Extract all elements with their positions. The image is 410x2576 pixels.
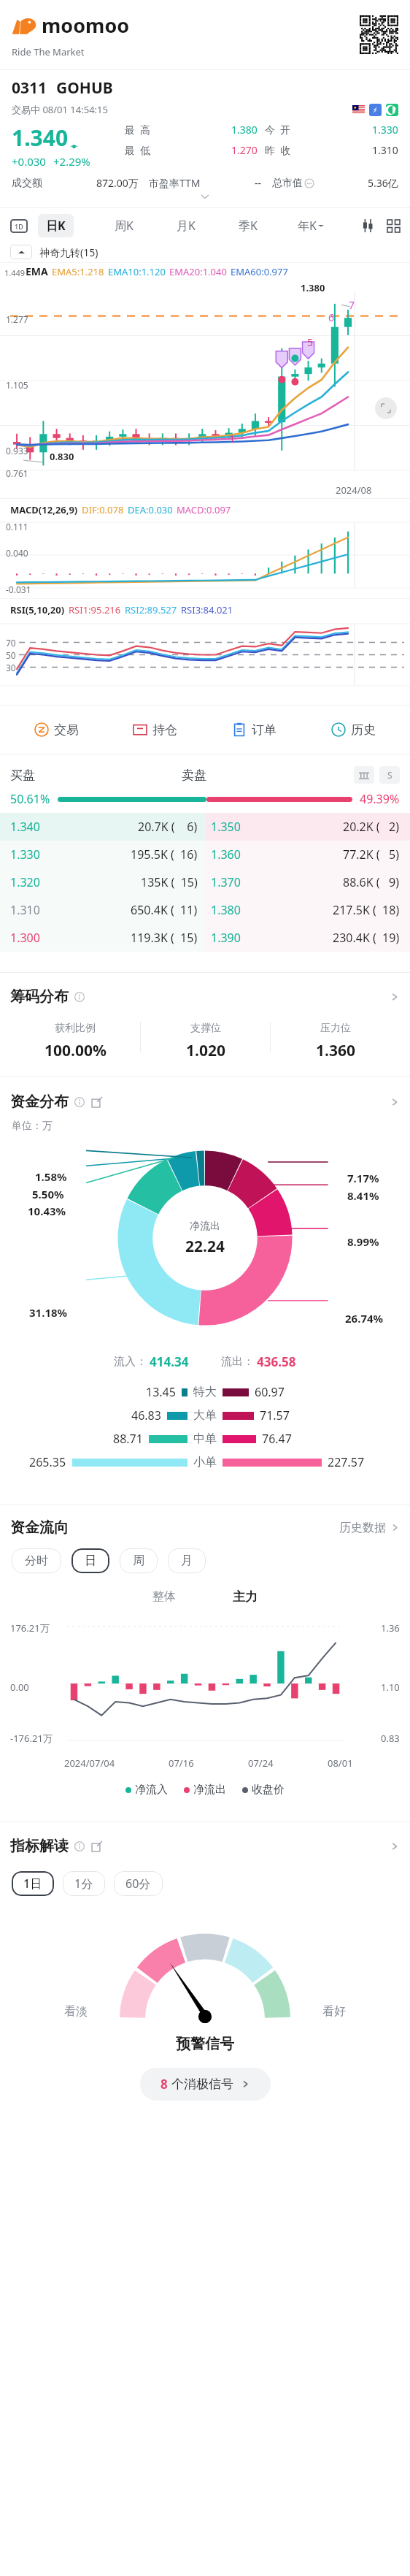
staticText: ⚡ xyxy=(373,107,378,114)
button[interactable]: 指标解读 xyxy=(0,1834,410,1858)
staticText: 20.7K ( 6) xyxy=(138,819,198,835)
staticText: 神奇九转(15) xyxy=(39,245,98,259)
staticText: 22.24 xyxy=(185,1236,225,1257)
button[interactable]: Broker xyxy=(354,766,374,784)
staticText: 单位：万 xyxy=(12,1120,53,1133)
staticText: 135K ( 15) xyxy=(141,874,198,890)
staticText: 日 xyxy=(85,1553,96,1568)
staticText: RSI1:95.216 xyxy=(69,603,121,616)
staticText: 1.320 xyxy=(10,874,40,890)
button[interactable]: 1分 xyxy=(63,1871,105,1896)
staticText: 1.350 xyxy=(211,819,241,835)
staticText: 1.340 xyxy=(10,819,40,835)
button[interactable]: Night mode xyxy=(386,104,398,116)
staticText: 日K xyxy=(46,218,66,234)
button[interactable]: Collapse xyxy=(10,245,32,259)
staticText: 个消极信号 xyxy=(171,2076,233,2092)
button[interactable]: 资金流向 xyxy=(0,1518,410,1537)
staticText: 2024/07/04 xyxy=(64,1757,115,1770)
staticText: RSI2:89.527 xyxy=(125,603,177,616)
staticText: 31.18% xyxy=(29,1305,68,1320)
staticText: 60分 xyxy=(125,1876,151,1892)
staticText: 交易中 08/01 14:54:15 xyxy=(12,103,108,116)
button[interactable]: 交易 xyxy=(7,706,106,754)
staticText: 最 低 xyxy=(125,143,151,157)
button[interactable]: 周 xyxy=(120,1548,158,1573)
button[interactable]: 1 Day xyxy=(10,219,28,233)
button[interactable]: 年K xyxy=(298,214,324,237)
staticText: 净流出 xyxy=(193,1783,226,1797)
button[interactable]: 月 xyxy=(168,1548,206,1573)
button[interactable]: 周K xyxy=(112,214,136,237)
button[interactable]: 日 xyxy=(71,1548,109,1573)
button[interactable]: 历史 xyxy=(303,706,403,754)
staticText: 1.300 xyxy=(10,930,40,946)
staticText: 收盘价 xyxy=(252,1783,285,1797)
staticText: 1日 xyxy=(23,1876,42,1892)
staticText: 26.74% xyxy=(345,1311,384,1326)
button[interactable]: 分时 xyxy=(12,1548,61,1573)
staticText: 1D xyxy=(15,222,23,231)
staticText: 8.99% xyxy=(347,1234,379,1249)
button[interactable]: Shares unit xyxy=(379,766,400,784)
staticText: 227.57 xyxy=(328,1454,365,1470)
staticText: 1.449 xyxy=(4,267,26,278)
staticText: 季K xyxy=(239,218,258,234)
staticText: MACD(12,26,9) xyxy=(10,503,78,516)
button[interactable]: 60分 xyxy=(114,1871,163,1896)
staticText: 88.71 xyxy=(113,1431,143,1447)
button[interactable]: 1.300 xyxy=(0,924,410,952)
staticText: 净流出 xyxy=(190,1220,220,1233)
button[interactable]: 日K xyxy=(38,214,74,237)
button[interactable]: Share xyxy=(92,1841,102,1851)
staticText: 中单 xyxy=(193,1432,217,1446)
button[interactable]: Fullscreen xyxy=(375,397,397,419)
staticText: 1.277 xyxy=(6,313,28,325)
staticText: 10.43% xyxy=(28,1204,66,1218)
button[interactable]: 1.340 xyxy=(0,813,410,841)
staticText: -- xyxy=(255,176,262,190)
button[interactable]: Share xyxy=(92,1097,102,1107)
staticText: 看好 xyxy=(322,2004,346,2019)
button[interactable]: 1.320 xyxy=(0,868,410,896)
staticText: 20.2K ( 2) xyxy=(343,819,400,835)
staticText: 1分 xyxy=(74,1876,93,1892)
button[interactable]: 筹码分布 xyxy=(0,985,410,1009)
staticText: 88.6K ( 9) xyxy=(343,874,400,890)
staticText: 71.57 xyxy=(260,1407,290,1423)
button[interactable]: 持仓 xyxy=(106,706,204,754)
staticText: 周K xyxy=(115,218,134,234)
staticText: 1.360 xyxy=(316,1040,355,1061)
staticText: 1 xyxy=(229,432,236,446)
staticText: 分时 xyxy=(25,1553,48,1568)
staticText: 50.61% xyxy=(10,791,50,807)
button[interactable]: 资金分布 xyxy=(0,1090,410,1114)
staticText: EMA xyxy=(26,264,48,278)
button[interactable]: 1.330 xyxy=(0,841,410,868)
button[interactable]: More charts xyxy=(387,220,400,232)
staticText: 8 xyxy=(160,2076,168,2092)
staticText: 市盈率TTM xyxy=(149,176,201,190)
button[interactable]: Candle settings xyxy=(361,219,374,232)
staticText: 1.370 xyxy=(211,874,241,890)
button[interactable]: 1.310 xyxy=(0,896,410,924)
staticText: 持仓 xyxy=(152,722,177,738)
staticText: 1.380 xyxy=(231,123,258,137)
button[interactable]: 主力 xyxy=(221,1586,269,1608)
staticText: 230.4K ( 19) xyxy=(333,930,400,946)
staticText: 7.17% xyxy=(347,1171,379,1185)
button[interactable]: 整体 xyxy=(141,1586,187,1607)
button[interactable]: 季K xyxy=(236,214,260,237)
button[interactable]: 8 xyxy=(140,2068,271,2101)
staticText: 1.380 xyxy=(301,281,325,294)
staticText: 1.58% xyxy=(35,1169,67,1184)
button[interactable]: 1日 xyxy=(12,1871,54,1896)
staticText: RSI(5,10,20) xyxy=(10,603,65,616)
button[interactable]: 订单 xyxy=(204,706,303,754)
staticText: 5 xyxy=(307,335,314,349)
button[interactable]: 月K xyxy=(174,214,198,237)
staticText: EMA20:1.040 xyxy=(169,265,227,278)
staticText: 整体 xyxy=(152,1589,176,1604)
staticText: 最 高 xyxy=(125,123,151,137)
staticText: 历史 xyxy=(351,722,376,738)
